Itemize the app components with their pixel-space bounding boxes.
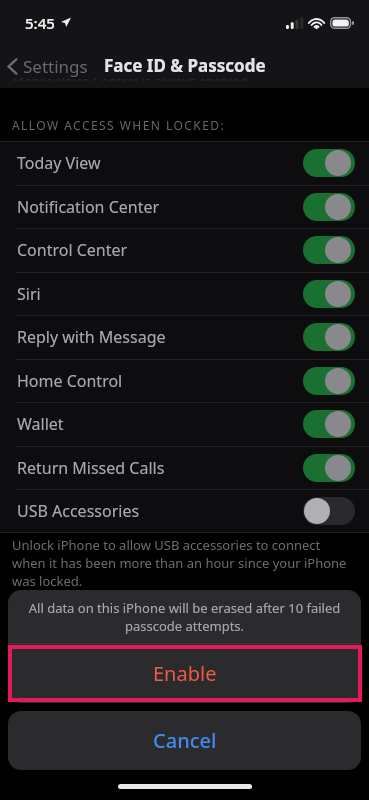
staticText: Home Control [17, 370, 123, 392]
button[interactable]: Siri [0, 272, 369, 316]
button[interactable]: On [303, 454, 355, 482]
button[interactable]: Return Missed Calls [0, 446, 369, 490]
staticText: Notification Center [17, 196, 160, 218]
button[interactable]: Home Control [0, 359, 369, 403]
button[interactable]: Notification Center [0, 185, 369, 229]
staticText: USB Accessories [17, 500, 140, 522]
staticText: Cancel [153, 727, 217, 754]
staticText: Settings [23, 55, 88, 78]
staticText: 5:45 [25, 13, 55, 33]
staticText: Unlock iPhone to allow USB accessories t… [12, 536, 353, 590]
staticText: All data on this iPhone will be erased a… [24, 599, 345, 635]
button[interactable]: Enable [8, 644, 361, 703]
button[interactable]: Control Center [0, 228, 369, 272]
staticText: Enable [153, 660, 217, 687]
button[interactable]: On [303, 193, 355, 221]
staticText: Control Center [17, 239, 128, 261]
button[interactable]: On [303, 280, 355, 308]
button[interactable]: USB Accessories [0, 489, 369, 533]
button[interactable]: Cancel [8, 711, 361, 770]
staticText: ALLOW ACCESS WHEN LOCKED: [12, 117, 226, 133]
button[interactable]: On [303, 236, 355, 264]
staticText: Wallet [17, 413, 64, 435]
staticText: Face ID & Passcode [104, 54, 266, 77]
staticText: Return Missed Calls [17, 457, 165, 479]
button[interactable]: Wallet [0, 402, 369, 446]
button[interactable]: On [303, 367, 355, 395]
staticText: Today View [17, 152, 101, 174]
button[interactable]: On [303, 410, 355, 438]
button[interactable]: Today View [0, 141, 369, 185]
staticText: Reply with Message [17, 326, 166, 348]
staticText: Mobile Voice Control is always enabled. [12, 78, 252, 81]
button[interactable]: On [303, 323, 355, 351]
staticText: Siri [17, 283, 41, 305]
button[interactable]: Off [303, 497, 355, 525]
button[interactable]: On [303, 149, 355, 177]
button[interactable]: Back to Settings [0, 52, 96, 81]
button[interactable]: Reply with Message [0, 315, 369, 359]
